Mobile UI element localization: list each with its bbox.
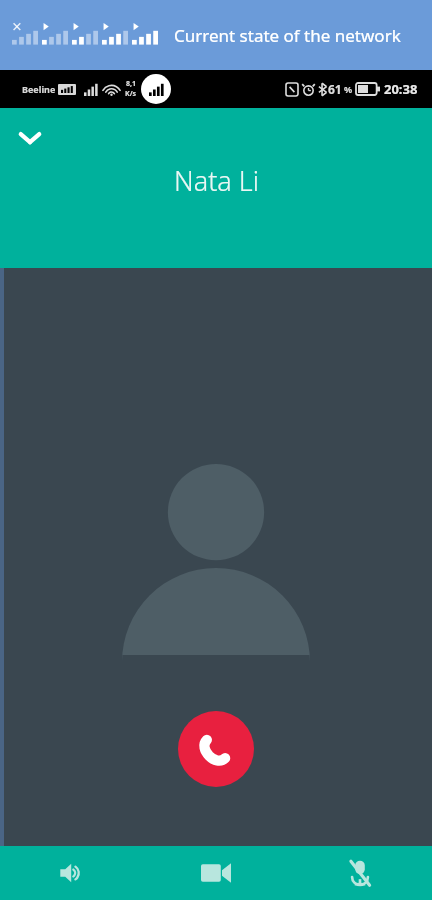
staticText: K/s: [125, 89, 137, 99]
staticText: 8,1: [126, 79, 137, 89]
staticText: Nata Li: [174, 162, 259, 199]
staticText: 61: [328, 81, 342, 97]
button[interactable]: End call: [178, 711, 254, 787]
button[interactable]: Video: [144, 846, 288, 900]
button[interactable]: Mute microphone: [288, 846, 432, 900]
staticText: Current state of the network: [174, 24, 401, 47]
button[interactable]: Collapse: [8, 116, 52, 160]
staticText: 20:38: [384, 80, 418, 98]
staticText: Beeline: [22, 83, 56, 95]
button[interactable]: Speaker: [0, 846, 144, 900]
staticText: %: [344, 83, 353, 95]
